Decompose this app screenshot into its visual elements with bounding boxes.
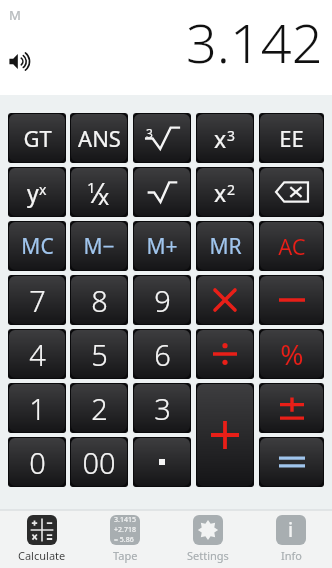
button[interactable]: Square root	[133, 167, 191, 217]
staticText: x	[214, 123, 227, 154]
button[interactable]: M plus	[133, 221, 191, 271]
staticText: GT	[23, 123, 52, 153]
button[interactable]: 3.1415	[83, 510, 166, 568]
staticText: ANS	[78, 123, 121, 153]
staticText: 3.1415	[114, 515, 136, 525]
button[interactable]: Multiply	[196, 275, 254, 325]
staticText: 4	[29, 335, 46, 374]
button[interactable]: MR	[196, 221, 254, 271]
button[interactable]: x cubed	[196, 113, 254, 163]
button[interactable]: i	[249, 510, 332, 568]
button[interactable]: 3	[133, 383, 191, 433]
button[interactable]: Plus minus	[259, 383, 324, 433]
staticText: i	[288, 517, 294, 543]
staticText: ⁄	[96, 174, 100, 211]
staticText: Calculate	[18, 548, 66, 563]
staticText: x	[214, 177, 227, 208]
button[interactable]: 6	[133, 329, 191, 379]
button[interactable]: Settings	[166, 510, 249, 568]
staticText: Tape	[113, 548, 138, 563]
staticText: x	[98, 183, 110, 212]
staticText: MC	[21, 232, 54, 261]
button[interactable]: 1	[8, 383, 66, 433]
button[interactable]: y to the x	[8, 167, 66, 217]
button[interactable]: Equals	[259, 437, 324, 487]
staticText: 3.142	[186, 5, 323, 79]
button[interactable]: 9	[133, 275, 191, 325]
button[interactable]: Plus	[196, 383, 254, 487]
button[interactable]: Percent	[259, 329, 324, 379]
button[interactable]: one over x	[70, 167, 128, 217]
staticText: M−	[83, 232, 115, 261]
staticText: 9	[154, 281, 171, 320]
button[interactable]: MC	[8, 221, 66, 271]
button[interactable]: Cube root	[133, 113, 191, 163]
staticText: Settings	[187, 548, 229, 563]
staticText: 3	[146, 125, 153, 141]
staticText: %	[280, 335, 304, 373]
staticText: 2	[91, 389, 108, 428]
button[interactable]: 7	[8, 275, 66, 325]
staticText: 3	[227, 126, 236, 145]
button[interactable]: 2	[70, 383, 128, 433]
staticText: M	[9, 6, 21, 24]
staticText: y	[27, 177, 39, 208]
staticText: 1	[87, 177, 96, 197]
button[interactable]: GT	[8, 113, 66, 163]
staticText: MR	[209, 232, 242, 261]
staticText: M+	[146, 232, 178, 261]
staticText: 8	[91, 281, 108, 320]
staticText: Info	[281, 548, 302, 563]
staticText: 2	[227, 180, 236, 199]
button[interactable]: Minus	[259, 275, 324, 325]
button[interactable]: Decimal point	[133, 437, 191, 487]
button[interactable]: double zero	[70, 437, 128, 487]
staticText: 7	[29, 281, 46, 320]
staticText: 00	[82, 443, 116, 482]
button[interactable]: 8	[70, 275, 128, 325]
button[interactable]: 0	[8, 437, 66, 487]
staticText: x	[39, 180, 47, 199]
staticText: 0	[29, 443, 46, 482]
button[interactable]: Divide	[196, 329, 254, 379]
staticText: 6	[154, 335, 171, 374]
staticText: EE	[279, 123, 304, 153]
staticText: +2.718	[114, 525, 136, 535]
button[interactable]: Backspace	[259, 167, 324, 217]
staticText: = 5.86	[114, 535, 134, 545]
staticText: AC	[278, 231, 306, 261]
button[interactable]: AC	[259, 221, 324, 271]
button[interactable]: ANS	[70, 113, 128, 163]
button[interactable]: Calculate	[0, 510, 83, 568]
button[interactable]: 5	[70, 329, 128, 379]
button[interactable]: Sound	[9, 52, 30, 71]
staticText: 3	[154, 389, 171, 428]
button[interactable]: x squared	[196, 167, 254, 217]
staticText: 1	[29, 389, 46, 428]
button[interactable]: 4	[8, 329, 66, 379]
button[interactable]: M minus	[70, 221, 128, 271]
staticText: 5	[91, 335, 108, 374]
button[interactable]: EE	[259, 113, 324, 163]
